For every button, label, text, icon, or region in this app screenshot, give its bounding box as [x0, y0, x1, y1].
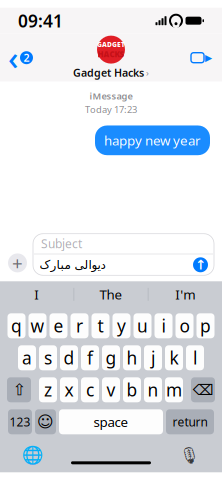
button[interactable]: Send [193, 257, 208, 272]
button[interactable]: Shift [7, 377, 31, 402]
button[interactable]: v [102, 377, 120, 402]
staticText: › [146, 66, 149, 79]
button[interactable]: i [154, 313, 172, 338]
staticText: 🎙 [179, 446, 199, 464]
button[interactable]: f [81, 345, 99, 370]
staticText: 09:41 [18, 9, 63, 32]
button[interactable]: g [102, 345, 120, 370]
staticText: ⇧ [12, 381, 25, 399]
staticText: r [76, 314, 83, 337]
staticText: i [161, 314, 165, 337]
button[interactable]: FaceTime [181, 36, 222, 80]
button[interactable]: j [144, 345, 162, 370]
staticText: j [151, 346, 155, 369]
staticText: s [44, 346, 52, 369]
button[interactable]: o [175, 313, 193, 338]
button[interactable]: s [39, 345, 57, 370]
staticText: v [106, 378, 115, 401]
staticText: ⌫ [192, 381, 213, 398]
staticText: The [99, 285, 122, 303]
staticText: 🌐 [22, 445, 44, 465]
staticText: I'm [175, 285, 195, 303]
button[interactable]: c [81, 377, 99, 402]
button[interactable]: space [59, 409, 163, 434]
staticText: Gadget Hacks [73, 66, 144, 80]
staticText: h [126, 346, 137, 369]
staticText: b [126, 378, 137, 401]
button[interactable]: x [60, 377, 78, 402]
button[interactable]: b [123, 377, 141, 402]
staticText: z [44, 378, 52, 401]
staticText: x [64, 378, 73, 401]
staticText: ▶ [205, 52, 212, 63]
staticText: Today 17:23 [85, 103, 137, 115]
staticText: t [97, 314, 103, 337]
staticText: d [63, 346, 74, 369]
button[interactable]: I'm [148, 281, 222, 307]
button[interactable]: z [39, 377, 57, 402]
staticText: q [11, 314, 22, 337]
button[interactable]: Add attachment [8, 250, 27, 275]
button[interactable]: Dictation [172, 442, 206, 468]
button[interactable]: The [74, 281, 148, 307]
staticText: m [166, 378, 182, 401]
button[interactable]: Delete [191, 377, 215, 402]
button[interactable]: I [0, 281, 73, 307]
staticText: Subject [41, 236, 82, 252]
staticText: l [193, 346, 197, 369]
button[interactable]: h [123, 345, 141, 370]
staticText: a [22, 346, 32, 369]
button[interactable]: k [165, 345, 183, 370]
staticText: + [12, 250, 23, 275]
staticText: n [147, 378, 158, 401]
staticText: 123 [9, 414, 30, 430]
button[interactable]: m [165, 377, 183, 402]
staticText: c [86, 378, 94, 401]
button[interactable]: p [196, 313, 214, 338]
staticText: ☺ [37, 413, 54, 431]
staticText: happy new year [104, 131, 201, 149]
button[interactable]: w [28, 313, 46, 338]
staticText: f [87, 346, 93, 369]
staticText: g [105, 346, 116, 369]
staticText: o [179, 314, 189, 337]
staticText: return [172, 414, 207, 430]
staticText: e [53, 314, 63, 337]
button[interactable]: Change keyboard [16, 442, 50, 468]
button[interactable]: q [7, 313, 25, 338]
staticText: ↑ [195, 257, 206, 272]
staticText: GADGET [97, 40, 125, 49]
button[interactable]: d [60, 345, 78, 370]
staticText: I [34, 285, 39, 303]
button[interactable]: r [70, 313, 88, 338]
staticText: iMessage [89, 90, 132, 102]
staticText: u [137, 314, 148, 337]
button[interactable]: e [49, 313, 67, 338]
button[interactable]: return [166, 409, 214, 434]
button[interactable]: u [133, 313, 151, 338]
staticText: p [200, 314, 211, 337]
staticText: ‹ [8, 36, 18, 79]
staticText: HACKS [97, 49, 124, 59]
staticText: k [169, 346, 178, 369]
staticText: y [117, 314, 126, 337]
button[interactable]: Emoji [35, 409, 56, 434]
button[interactable]: 123 [8, 409, 32, 434]
staticText: w [30, 314, 44, 337]
staticText: دیوالی مبارک [39, 258, 105, 272]
button[interactable]: t [91, 313, 109, 338]
staticText: 2 [23, 51, 29, 65]
button[interactable]: a [18, 345, 36, 370]
button[interactable]: y [112, 313, 130, 338]
button[interactable]: l [186, 345, 204, 370]
button[interactable]: Back, 2 unread [0, 36, 41, 80]
button[interactable]: n [144, 377, 162, 402]
staticText: space [93, 413, 128, 431]
